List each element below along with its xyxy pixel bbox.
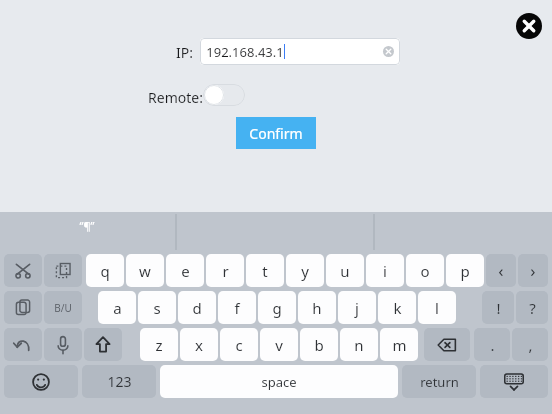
staticText: c — [235, 335, 243, 355]
button[interactable]: j — [338, 291, 376, 324]
button[interactable]: z — [140, 328, 178, 361]
button[interactable]: k — [378, 291, 416, 324]
staticText: w — [139, 261, 151, 281]
button[interactable]: 192.168.43.1 — [200, 38, 400, 65]
staticText: k — [393, 298, 402, 318]
staticText: › — [530, 259, 536, 282]
staticText: “¶” — [79, 218, 95, 233]
button[interactable]: w — [126, 254, 164, 287]
staticText: ! — [496, 298, 501, 318]
staticText: i — [383, 261, 387, 281]
staticText: m — [392, 335, 407, 355]
staticText: 192.168.43.1 — [206, 43, 284, 61]
button[interactable]: n — [340, 328, 378, 361]
staticText: Remote: — [148, 88, 203, 107]
staticText: ‹ — [498, 259, 504, 282]
button[interactable]: Cut — [4, 254, 42, 287]
button[interactable]: m — [380, 328, 418, 361]
staticText: z — [155, 335, 163, 355]
button[interactable]: a — [98, 291, 136, 324]
staticText: . — [490, 335, 495, 355]
staticText: d — [192, 298, 202, 318]
staticText: f — [234, 298, 240, 318]
button[interactable]: Copy — [44, 254, 82, 287]
staticText: a — [113, 298, 122, 318]
staticText: l — [435, 298, 439, 318]
button[interactable]: h — [298, 291, 336, 324]
button[interactable]: return — [402, 365, 476, 398]
button[interactable]: g — [258, 291, 296, 324]
staticText: e — [181, 261, 190, 281]
button[interactable]: e — [166, 254, 204, 287]
staticText: u — [340, 261, 350, 281]
staticText: t — [262, 261, 268, 281]
button[interactable]: space — [160, 365, 398, 398]
button[interactable]: c — [220, 328, 258, 361]
button[interactable]: r — [206, 254, 244, 287]
button[interactable]: i — [366, 254, 404, 287]
button[interactable]: l — [418, 291, 456, 324]
button[interactable]: Remote — [203, 84, 245, 106]
staticText: o — [420, 261, 430, 281]
button[interactable]: x — [180, 328, 218, 361]
staticText: r — [222, 261, 229, 281]
staticText: q — [100, 261, 110, 281]
button[interactable]: ! — [482, 291, 514, 324]
staticText: 123 — [107, 372, 132, 391]
staticText: g — [272, 298, 282, 318]
staticText: s — [153, 298, 161, 318]
button[interactable]: p — [446, 254, 484, 287]
staticText: IP: — [176, 43, 193, 62]
button[interactable]: t — [246, 254, 284, 287]
button[interactable]: q — [86, 254, 124, 287]
staticText: return — [420, 373, 459, 391]
staticText: ? — [529, 298, 536, 318]
button[interactable]: Close — [515, 12, 543, 40]
button[interactable]: o — [406, 254, 444, 287]
staticText: p — [460, 261, 470, 281]
button[interactable]: Emoji — [4, 365, 78, 398]
button[interactable]: v — [260, 328, 298, 361]
button[interactable]: s — [138, 291, 176, 324]
button[interactable]: , — [512, 328, 548, 361]
button[interactable]: b — [300, 328, 338, 361]
button[interactable]: y — [286, 254, 324, 287]
staticText: Confirm — [249, 124, 303, 143]
button[interactable]: Dictate — [44, 328, 82, 361]
button[interactable]: Undo — [4, 328, 42, 361]
button[interactable]: Paste — [4, 291, 42, 324]
button[interactable]: B/U — [44, 291, 82, 324]
staticText: B/U — [54, 301, 72, 315]
button[interactable]: f — [218, 291, 256, 324]
button[interactable]: ‹ — [486, 254, 516, 287]
button[interactable]: Confirm — [236, 117, 316, 149]
staticText: n — [354, 335, 364, 355]
staticText: v — [275, 335, 283, 355]
button[interactable]: › — [518, 254, 548, 287]
button[interactable]: d — [178, 291, 216, 324]
button[interactable]: 123 — [82, 365, 156, 398]
staticText: , — [528, 335, 533, 355]
button[interactable]: Backspace — [424, 328, 470, 361]
button[interactable]: . — [474, 328, 510, 361]
button[interactable]: Hide keyboard — [480, 365, 548, 398]
button[interactable]: Shift — [84, 328, 122, 361]
staticText: j — [355, 298, 359, 318]
button[interactable]: u — [326, 254, 364, 287]
button[interactable]: ? — [516, 291, 548, 324]
staticText: space — [261, 373, 297, 391]
staticText: x — [195, 335, 203, 355]
staticText: y — [301, 261, 309, 281]
staticText: h — [312, 298, 322, 318]
staticText: b — [314, 335, 324, 355]
